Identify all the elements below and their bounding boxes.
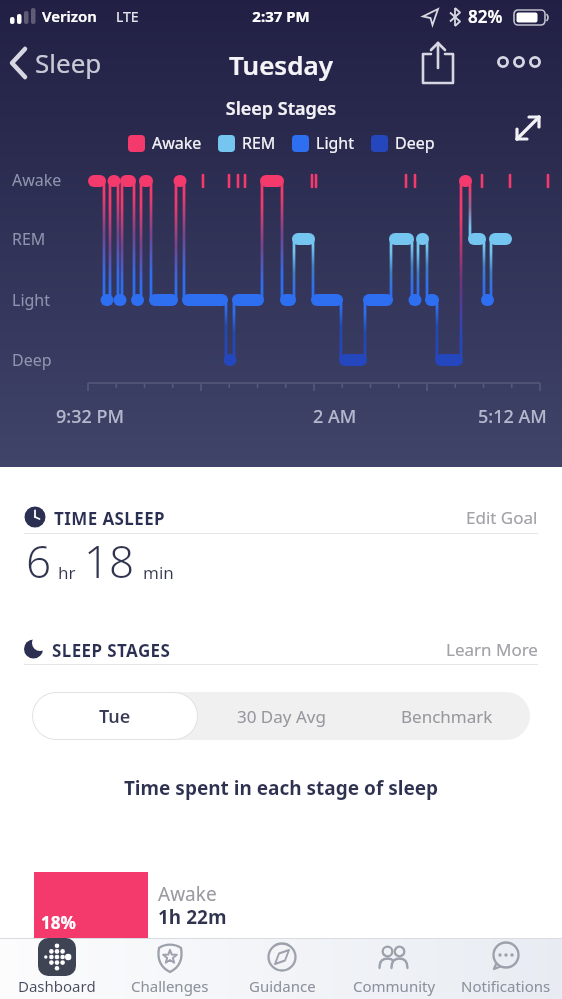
staticText: TIME ASLEEP xyxy=(54,507,166,530)
staticText: Notifications xyxy=(461,976,551,996)
staticText: Verizon xyxy=(42,6,97,26)
staticText: Deep xyxy=(395,132,435,154)
staticText: min xyxy=(143,561,174,584)
button[interactable]: Edit Goal xyxy=(440,500,550,534)
button[interactable]: Notifications xyxy=(450,938,562,999)
button[interactable]: Tue xyxy=(33,693,197,739)
staticText: Benchmark xyxy=(401,705,493,728)
staticText: Guidance xyxy=(249,976,316,996)
staticText: Edit Goal xyxy=(466,506,538,529)
staticText: SLEEP STAGES xyxy=(52,639,171,662)
staticText: Awake xyxy=(12,169,62,191)
staticText: 18 xyxy=(84,531,135,591)
staticText: 2 AM xyxy=(313,404,357,429)
staticText: 82% xyxy=(468,5,503,28)
staticText: 2:37 PM xyxy=(0,6,562,26)
button[interactable]: Challenges xyxy=(113,938,226,999)
button[interactable]: Benchmark xyxy=(364,692,530,740)
staticText: Light xyxy=(316,132,355,154)
staticText: hr xyxy=(58,561,76,584)
staticText: 6 xyxy=(26,531,52,591)
staticText: REM xyxy=(12,228,46,250)
button[interactable]: Sleep xyxy=(6,40,126,85)
button[interactable]: Learn More xyxy=(430,632,550,666)
staticText: 5:12 AM xyxy=(478,404,547,429)
staticText: 18% xyxy=(41,911,76,934)
button[interactable]: Guidance xyxy=(226,938,338,999)
button[interactable] xyxy=(508,108,552,152)
staticText: 9:32 PM xyxy=(56,404,124,429)
staticText: Sleep Stages xyxy=(0,96,562,121)
staticText: Tue xyxy=(99,704,131,729)
staticText: Tuesday xyxy=(0,47,562,82)
staticText: Sleep xyxy=(35,45,102,80)
staticText: Learn More xyxy=(446,638,538,661)
button[interactable]: Dashboard xyxy=(0,938,113,999)
staticText: Deep xyxy=(12,349,52,371)
staticText: Time spent in each stage of sleep xyxy=(0,775,562,801)
button[interactable]: 30 Day Avg xyxy=(198,692,364,740)
staticText: Challenges xyxy=(131,976,209,996)
staticText: REM xyxy=(242,132,276,154)
staticText: LTE xyxy=(116,7,139,26)
staticText: Community xyxy=(353,976,436,996)
staticText: Awake xyxy=(152,132,202,154)
button[interactable] xyxy=(416,38,461,88)
staticText: Dashboard xyxy=(18,976,96,996)
staticText: 30 Day Avg xyxy=(237,705,326,728)
staticText: Awake xyxy=(158,881,217,907)
button[interactable] xyxy=(490,46,550,78)
button[interactable]: Community xyxy=(338,938,450,999)
staticText: 1h 22m xyxy=(158,904,227,930)
staticText: Light xyxy=(12,289,51,311)
